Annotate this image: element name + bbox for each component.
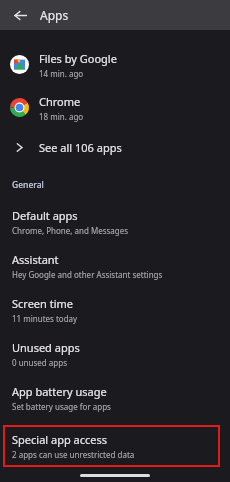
staticText: Files by Google — [39, 51, 117, 66]
staticText: Set battery usage for apps — [12, 401, 111, 412]
staticText: 2 apps can use unrestricted data — [12, 449, 135, 460]
button[interactable]: Assistant — [0, 244, 230, 288]
staticText: Default apps — [12, 208, 78, 223]
staticText: Chrome — [39, 94, 81, 109]
button[interactable]: Chrome — [0, 86, 230, 129]
staticText: Unused apps — [12, 340, 80, 355]
staticText: Screen time — [12, 296, 74, 311]
staticText: Apps — [40, 7, 69, 23]
button[interactable]: Files by Google — [0, 43, 230, 86]
button[interactable]: Unused apps — [0, 332, 230, 376]
staticText: Hey Google and other Assistant settings — [12, 269, 163, 280]
staticText: General — [12, 179, 44, 191]
staticText: See all 106 apps — [39, 140, 122, 155]
button[interactable]: Screen time — [0, 288, 230, 332]
button[interactable]: Default apps — [0, 200, 230, 244]
button[interactable]: See all 106 apps — [0, 129, 230, 165]
staticText: 11 minutes today — [12, 313, 78, 324]
button[interactable]: Back — [8, 3, 32, 27]
staticText: 18 min. ago — [39, 111, 84, 122]
button[interactable]: Special app access — [3, 425, 220, 467]
staticText: Assistant — [12, 252, 59, 267]
button[interactable]: App battery usage — [0, 376, 230, 420]
staticText: Chrome, Phone, and Messages — [12, 225, 129, 236]
staticText: 14 min. ago — [39, 68, 84, 79]
staticText: 0 unused apps — [12, 357, 67, 368]
staticText: Special app access — [12, 432, 108, 447]
staticText: App battery usage — [12, 384, 107, 399]
